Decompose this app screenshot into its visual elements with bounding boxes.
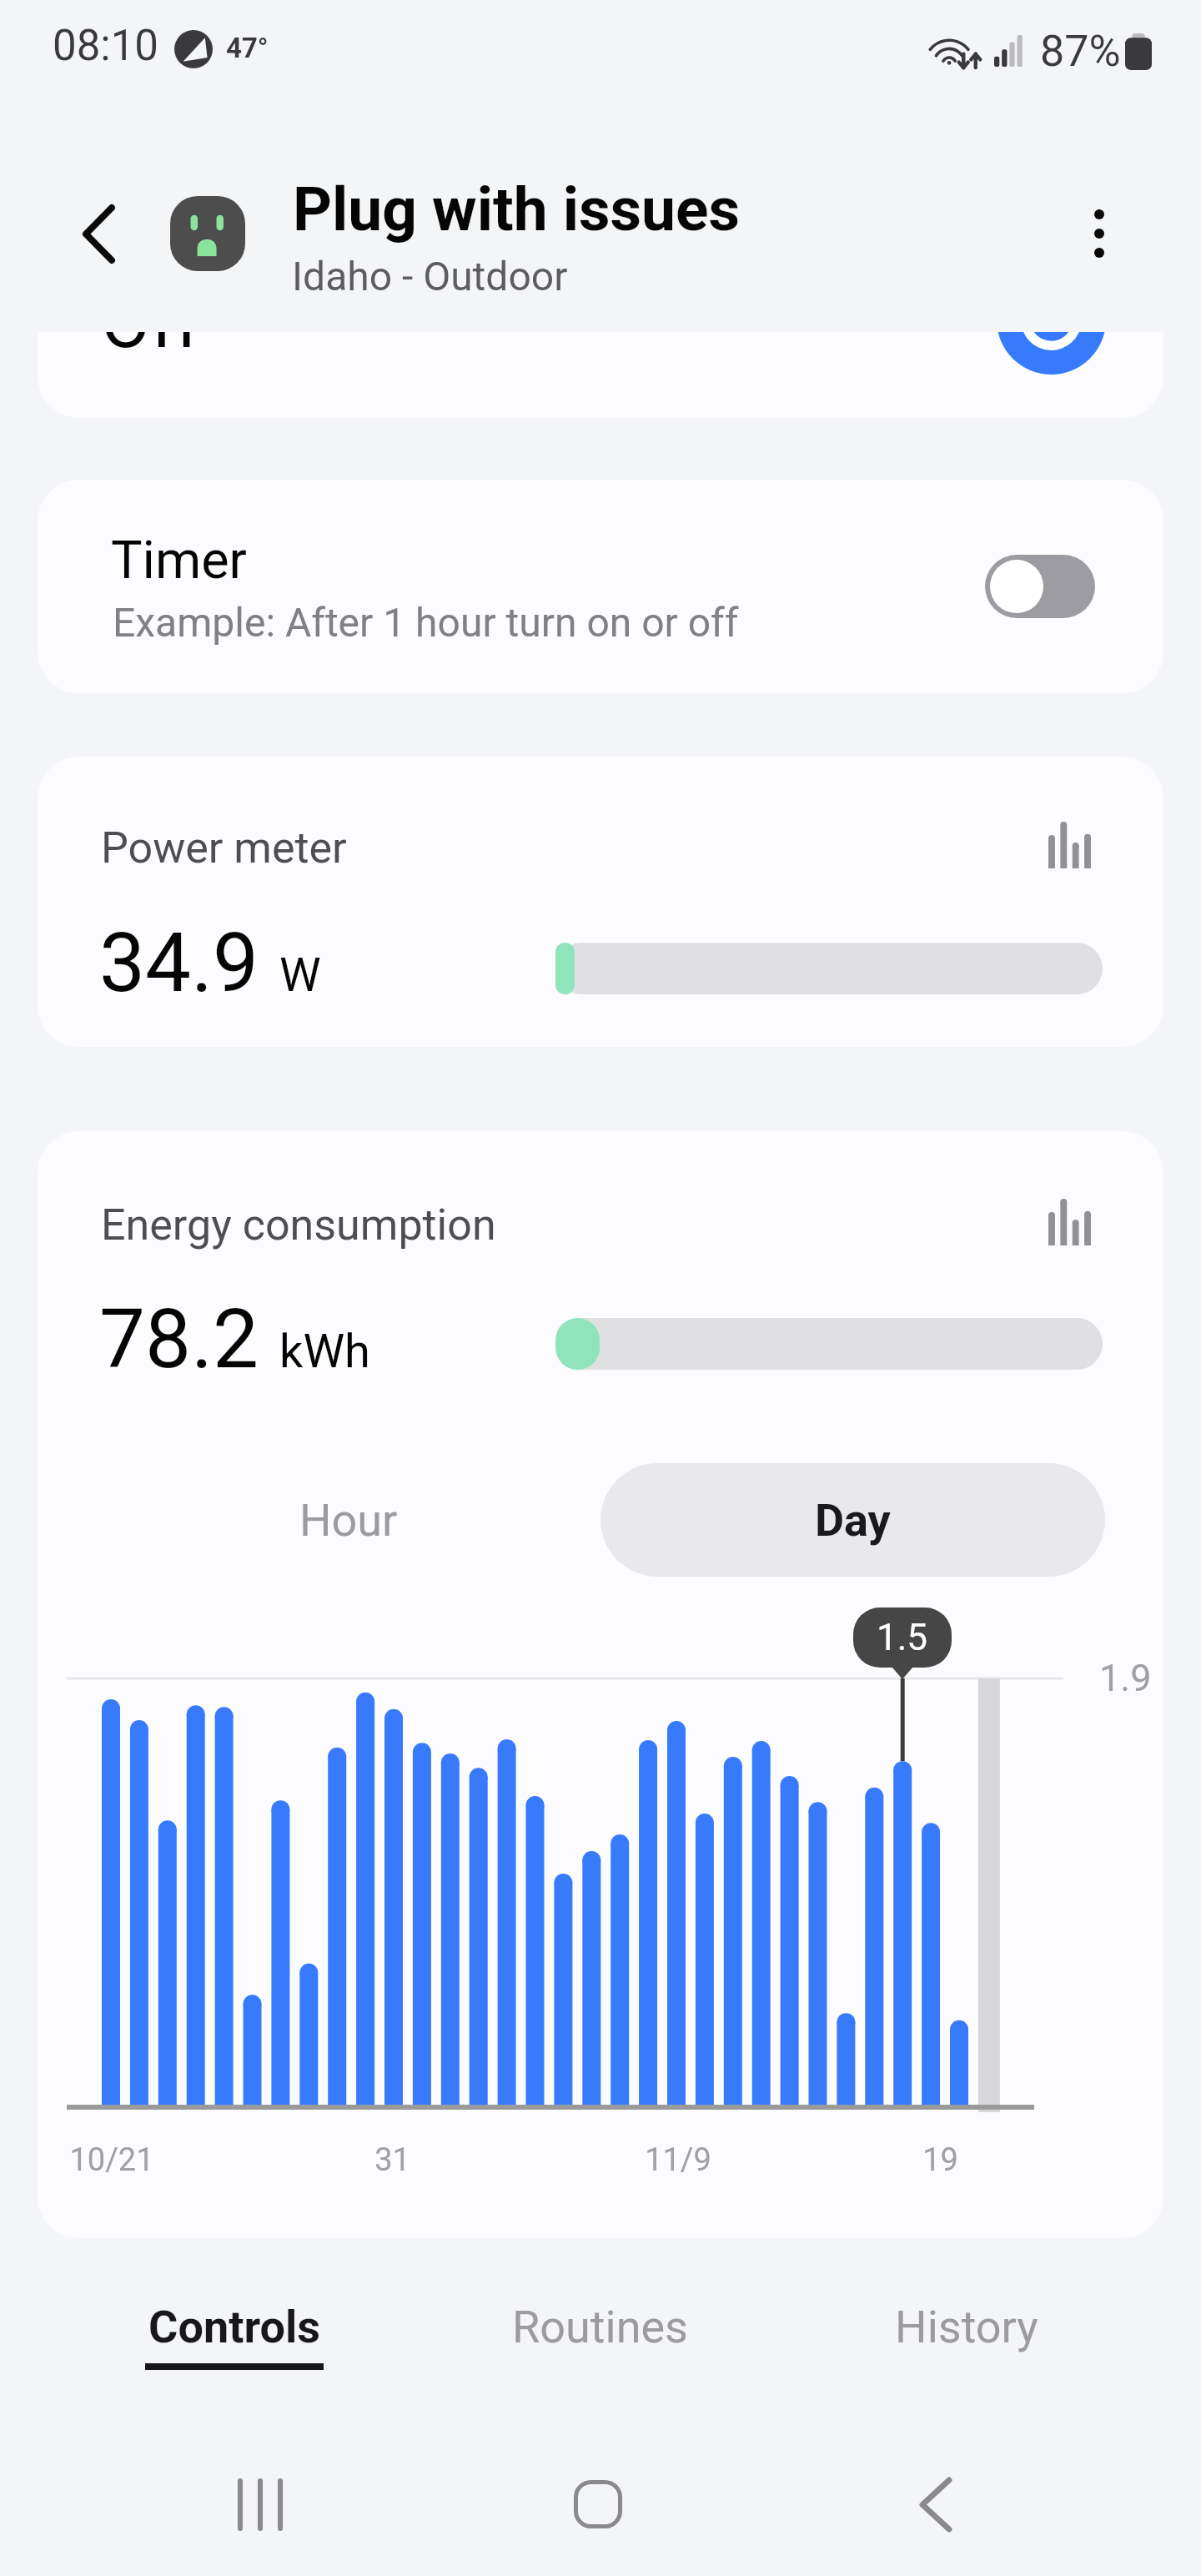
staticText: Energy consumption: [101, 1200, 496, 1250]
button[interactable]: Routines: [417, 2279, 783, 2402]
staticText: Idaho - Outdoor: [292, 253, 568, 299]
staticText: Plug with issues: [293, 174, 740, 245]
button[interactable]: Day: [600, 1463, 1105, 1577]
button[interactable]: Hour: [96, 1463, 600, 1577]
button[interactable]: Off: [38, 332, 1163, 418]
staticText: History: [895, 2301, 1038, 2353]
button[interactable]: [985, 555, 1095, 618]
staticText: 34.9: [99, 915, 259, 1011]
staticText: 47°: [226, 32, 269, 64]
button[interactable]: Power meter: [38, 757, 1163, 1047]
button[interactable]: History: [783, 2279, 1149, 2402]
staticText: W: [279, 948, 321, 1003]
staticText: Routines: [512, 2301, 688, 2353]
staticText: Power meter: [101, 823, 347, 873]
staticText: 1.9: [1099, 1656, 1152, 1700]
button[interactable]: Controls: [52, 2279, 417, 2402]
staticText: 19: [922, 2141, 958, 2179]
button[interactable]: Recent apps: [160, 2433, 360, 2576]
staticText: Controls: [148, 2301, 320, 2353]
button[interactable]: Back: [836, 2433, 1036, 2576]
staticText: 10/21: [69, 2141, 154, 2179]
button[interactable]: More options: [1059, 194, 1139, 274]
button[interactable]: Home: [498, 2433, 698, 2576]
button[interactable]: Timer: [38, 480, 1163, 693]
staticText: Day: [815, 1494, 891, 1547]
staticText: 11/9: [645, 2141, 711, 2179]
staticText: 31: [374, 2141, 410, 2179]
staticText: 78.2: [99, 1291, 259, 1387]
staticText: 87%: [1040, 26, 1121, 77]
button[interactable]: Back: [58, 194, 138, 274]
staticText: 1.5: [877, 1616, 928, 1659]
staticText: 08:10: [53, 21, 159, 71]
staticText: Timer: [111, 530, 247, 591]
staticText: kWh: [279, 1324, 370, 1379]
staticText: Hour: [299, 1494, 398, 1547]
staticText: Example: After 1 hour turn on or off: [113, 599, 739, 646]
staticText: Off: [101, 332, 200, 365]
